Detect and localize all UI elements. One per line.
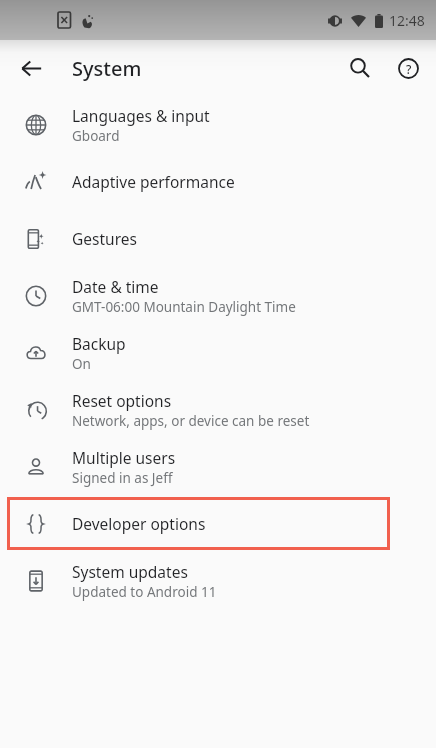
- button[interactable]: Back: [7, 44, 55, 92]
- button[interactable]: Date & time: [0, 267, 436, 324]
- staticText: Updated to Android 11: [72, 583, 217, 601]
- staticText: Reset options: [72, 390, 172, 411]
- button[interactable]: Gestures: [0, 210, 436, 267]
- button[interactable]: Languages & input: [0, 96, 436, 153]
- button[interactable]: Reset options: [0, 381, 436, 438]
- staticText: Gboard: [72, 127, 120, 145]
- staticText: ?: [406, 61, 412, 77]
- staticText: Signed in as Jeff: [72, 469, 173, 487]
- staticText: GMT-06:00 Mountain Daylight Time: [72, 298, 296, 316]
- staticText: Developer options: [72, 513, 206, 534]
- staticText: Languages & input: [72, 105, 210, 126]
- staticText: 12:48: [389, 11, 425, 30]
- button[interactable]: Search: [336, 44, 384, 92]
- button[interactable]: Adaptive performance: [0, 153, 436, 210]
- staticText: System: [72, 55, 142, 82]
- staticText: Date & time: [72, 276, 159, 297]
- staticText: Multiple users: [72, 447, 176, 468]
- button[interactable]: Multiple users: [0, 438, 436, 495]
- button[interactable]: Backup: [0, 324, 436, 381]
- staticText: System updates: [72, 561, 188, 582]
- staticText: Gestures: [72, 228, 137, 249]
- staticText: Adaptive performance: [72, 171, 235, 192]
- staticText: On: [72, 355, 91, 373]
- button[interactable]: Help: [384, 44, 432, 92]
- staticText: Backup: [72, 333, 126, 354]
- button[interactable]: Developer options: [0, 495, 436, 552]
- button[interactable]: System updates: [0, 552, 436, 609]
- staticText: Network, apps, or device can be reset: [72, 412, 310, 430]
